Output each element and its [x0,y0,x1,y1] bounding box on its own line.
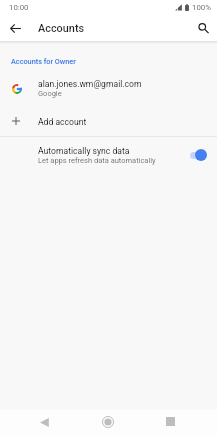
staticText: Add account [38,117,87,127]
staticText: 100% [192,3,211,12]
staticText: Let apps refresh data automatically [38,156,156,165]
staticText: Accounts [38,22,85,35]
staticText: 10:00 [9,3,29,12]
button[interactable]: Add account [0,109,217,135]
button[interactable]: Home [90,410,126,435]
button[interactable]: Navigate up [3,16,27,40]
button[interactable]: alan.jones.wm@gmail.com [0,74,217,108]
staticText: Google [38,89,62,98]
button[interactable]: Back [26,410,62,435]
staticText: alan.jones.wm@gmail.com [38,79,142,89]
button[interactable]: Automatically sync data [0,140,217,172]
staticText: Automatically sync data [38,146,130,156]
staticText: Accounts for Owner [11,57,76,66]
button[interactable]: Search [191,16,215,40]
button[interactable]: Recent apps [152,410,188,435]
button[interactable]: Automatically sync data [188,147,208,163]
